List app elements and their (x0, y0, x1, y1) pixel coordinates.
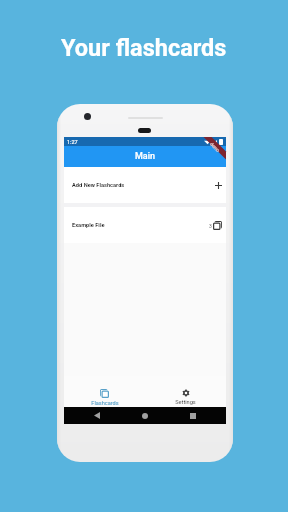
staticText: demo (209, 141, 221, 153)
button[interactable]: Settings (145, 376, 226, 407)
staticText: Settings (175, 399, 196, 406)
staticText: Your flashcards (61, 34, 227, 62)
other: Home (142, 413, 148, 419)
button[interactable]: Example File (64, 207, 226, 243)
other: Add (215, 182, 222, 189)
button[interactable]: Flashcards (64, 376, 145, 407)
staticText: 1:27 (67, 139, 78, 145)
staticText: 3 (209, 223, 212, 229)
staticText: Main (135, 151, 156, 162)
button[interactable]: Add New Flashcards (64, 167, 226, 203)
staticText: Example File (72, 222, 105, 229)
staticText: Add New Flashcards (72, 182, 125, 189)
staticText: Flashcards (91, 400, 119, 407)
other: Back (94, 412, 100, 419)
